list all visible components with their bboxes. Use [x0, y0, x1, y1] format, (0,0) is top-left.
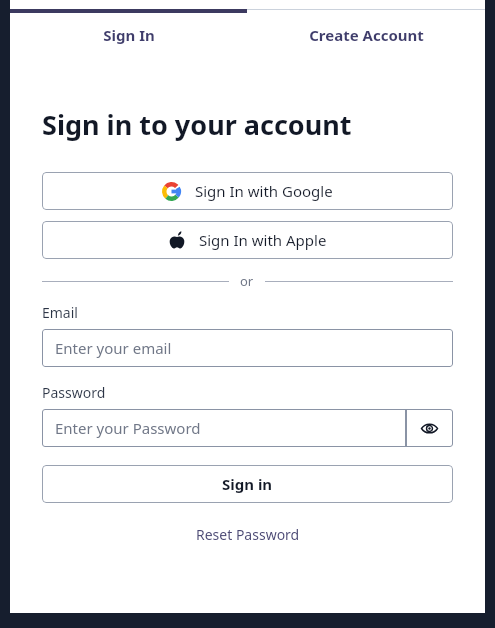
- button[interactable]: Sign In: [10, 13, 247, 57]
- staticText: Enter your email: [55, 338, 172, 358]
- staticText: or: [240, 272, 254, 290]
- button[interactable]: Sign in: [42, 465, 453, 503]
- staticText: Sign In with Apple: [199, 230, 327, 250]
- button[interactable]: Create Account: [247, 13, 485, 57]
- button[interactable]: Sign In with Apple: [42, 221, 453, 259]
- staticText: Password: [42, 383, 106, 402]
- staticText: Sign in to your account: [42, 106, 352, 143]
- button[interactable]: Reset Password: [10, 525, 485, 544]
- button[interactable]: Enter your email: [42, 329, 453, 367]
- staticText: Sign In: [103, 25, 155, 45]
- button[interactable]: Sign In with Google: [42, 172, 453, 210]
- staticText: Email: [42, 303, 78, 322]
- staticText: Create Account: [309, 25, 424, 45]
- staticText: Enter your Password: [55, 418, 201, 438]
- staticText: Sign in: [222, 474, 273, 494]
- button[interactable]: Show password: [406, 409, 453, 447]
- staticText: Reset Password: [196, 525, 300, 544]
- button[interactable]: Enter your Password: [42, 409, 406, 447]
- staticText: Sign In with Google: [195, 181, 333, 201]
